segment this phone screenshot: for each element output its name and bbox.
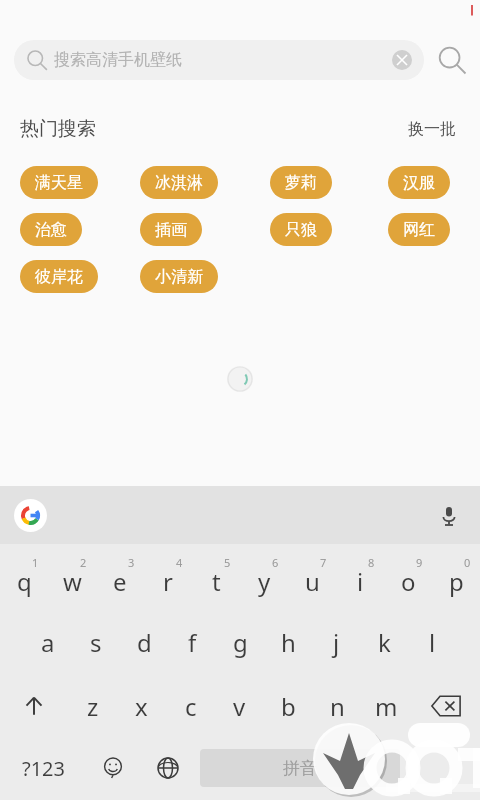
button[interactable]: x xyxy=(117,674,166,738)
button[interactable]: 3 xyxy=(96,546,144,610)
button[interactable]: Change language xyxy=(140,738,196,798)
button[interactable]: 冰淇淋 xyxy=(140,166,218,199)
button[interactable]: 搜索高清手机壁纸 xyxy=(14,40,424,80)
staticText: r xyxy=(163,565,173,598)
button[interactable]: Voice input xyxy=(432,499,466,533)
staticText: 0 xyxy=(464,555,471,570)
staticText: q xyxy=(17,565,32,598)
button[interactable]: c xyxy=(166,674,215,738)
button[interactable]: 6 xyxy=(240,546,288,610)
button[interactable]: 2 xyxy=(48,546,96,610)
button[interactable]: a xyxy=(24,610,72,674)
staticText: h xyxy=(281,626,296,659)
button[interactable]: n xyxy=(313,674,362,738)
staticText: e xyxy=(113,565,127,598)
staticText: ?123 xyxy=(22,755,65,782)
button[interactable]: Emoji xyxy=(86,738,140,798)
button[interactable]: m xyxy=(362,674,411,738)
button[interactable]: 5 xyxy=(192,546,240,610)
button[interactable]: k xyxy=(360,610,408,674)
button[interactable]: 治愈 xyxy=(20,213,82,246)
staticText: 热门搜索 xyxy=(20,117,96,141)
button[interactable]: 9 xyxy=(384,546,432,610)
staticText: u xyxy=(305,565,320,598)
button[interactable]: s xyxy=(72,610,120,674)
staticText: 满天星 xyxy=(35,173,83,193)
staticText: 小清新 xyxy=(155,267,203,287)
button[interactable]: l xyxy=(408,610,456,674)
staticText: 2 xyxy=(80,555,87,570)
button[interactable]: f xyxy=(168,610,216,674)
button[interactable]: 彼岸花 xyxy=(20,260,98,293)
button[interactable]: b xyxy=(264,674,313,738)
staticText: 萝莉 xyxy=(285,173,317,193)
staticText: b xyxy=(281,690,296,723)
staticText: 7 xyxy=(320,555,327,570)
button[interactable]: Space xyxy=(200,749,400,787)
staticText: y xyxy=(258,565,271,598)
button[interactable]: z xyxy=(68,674,117,738)
staticText: z xyxy=(87,690,99,723)
staticText: o xyxy=(401,565,416,598)
button[interactable]: 插画 xyxy=(140,213,202,246)
staticText: d xyxy=(137,626,152,659)
button[interactable]: v xyxy=(215,674,264,738)
staticText: s xyxy=(90,626,102,659)
button[interactable]: Clear xyxy=(392,50,412,70)
button[interactable]: 7 xyxy=(288,546,336,610)
staticText: j xyxy=(333,626,340,659)
staticText: 彼岸花 xyxy=(35,267,83,287)
button[interactable]: 萝莉 xyxy=(270,166,332,199)
button[interactable]: g xyxy=(216,610,264,674)
staticText: m xyxy=(375,690,398,723)
button[interactable]: d xyxy=(120,610,168,674)
button[interactable]: 只狼 xyxy=(270,213,332,246)
staticText: n xyxy=(330,690,345,723)
staticText: f xyxy=(188,626,197,659)
staticText: 插画 xyxy=(155,220,187,240)
staticText: 网红 xyxy=(403,220,435,240)
button[interactable]: 1 xyxy=(0,546,48,610)
staticText: t xyxy=(212,565,221,598)
button[interactable]: Shift xyxy=(0,674,68,738)
staticText: 冰淇淋 xyxy=(155,173,203,193)
staticText: i xyxy=(357,565,364,598)
button[interactable]: 0 xyxy=(432,546,480,610)
button[interactable]: h xyxy=(264,610,312,674)
staticText: 1 xyxy=(32,555,39,570)
button[interactable]: 满天星 xyxy=(20,166,98,199)
button[interactable]: Search xyxy=(424,32,480,88)
staticText: 换一批 xyxy=(408,119,456,139)
button[interactable]: Backspace xyxy=(411,674,480,738)
staticText: k xyxy=(378,626,391,659)
staticText: p xyxy=(449,565,464,598)
button[interactable]: 4 xyxy=(144,546,192,610)
staticText: 治愈 xyxy=(35,220,67,240)
staticText: 4 xyxy=(176,555,183,570)
staticText: 3 xyxy=(128,555,135,570)
staticText: 搜索高清手机壁纸 xyxy=(54,50,182,70)
staticText: 8 xyxy=(368,555,375,570)
button[interactable]: ?123 xyxy=(0,738,86,798)
button[interactable]: Google xyxy=(14,499,47,532)
staticText: 5 xyxy=(224,555,231,570)
staticText: 拼音 xyxy=(283,758,317,779)
button[interactable]: 汉服 xyxy=(388,166,450,199)
button[interactable]: 网红 xyxy=(388,213,450,246)
staticText: a xyxy=(41,626,55,659)
button[interactable]: 小清新 xyxy=(140,260,218,293)
staticText: w xyxy=(63,565,82,598)
staticText: 只狼 xyxy=(285,220,317,240)
staticText: 9 xyxy=(416,555,423,570)
button[interactable]: 8 xyxy=(336,546,384,610)
staticText: 汉服 xyxy=(403,173,435,193)
button[interactable]: j xyxy=(312,610,360,674)
staticText: c xyxy=(185,690,197,723)
staticText: g xyxy=(233,626,248,659)
staticText: l xyxy=(429,626,436,659)
button[interactable]: 换一批 xyxy=(404,115,460,143)
staticText: 6 xyxy=(272,555,279,570)
staticText: x xyxy=(135,690,148,723)
staticText: v xyxy=(233,690,246,723)
